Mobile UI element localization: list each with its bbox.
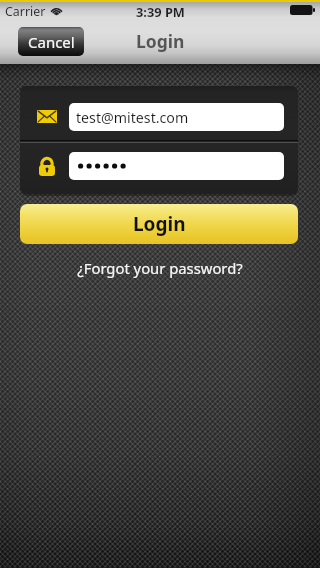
- staticText: test@mitest.com: [76, 108, 189, 127]
- other: Email: [37, 110, 57, 123]
- button[interactable]: Cancel: [18, 27, 84, 56]
- button[interactable]: [69, 152, 284, 180]
- button[interactable]: ¿Forgot your password?: [0, 258, 320, 278]
- staticText: Login: [136, 29, 185, 53]
- staticText: Carrier: [5, 3, 46, 20]
- button[interactable]: Login: [20, 204, 298, 244]
- staticText: 3:39 PM: [136, 3, 185, 20]
- other: Password: [39, 155, 55, 176]
- staticText: Login: [133, 211, 186, 237]
- button[interactable]: test@mitest.com: [69, 103, 284, 131]
- staticText: Cancel: [28, 32, 75, 52]
